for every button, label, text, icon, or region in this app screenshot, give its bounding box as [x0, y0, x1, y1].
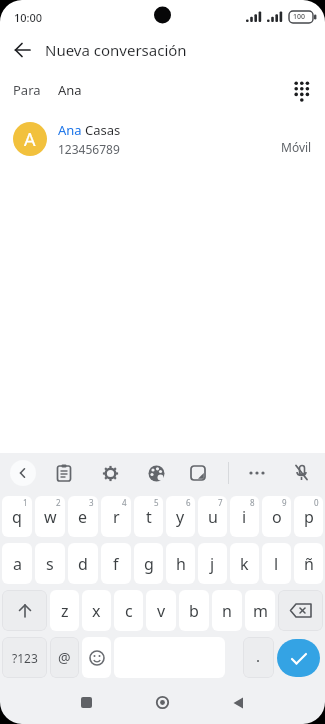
button[interactable]: c	[114, 590, 143, 631]
staticText: v	[157, 600, 166, 622]
button[interactable]: t	[134, 496, 163, 537]
staticText: k	[240, 553, 249, 575]
button[interactable]	[15, 42, 31, 58]
staticText: b	[189, 600, 199, 622]
button[interactable]: u	[198, 496, 227, 537]
button[interactable]: b	[179, 590, 209, 631]
staticText: 9	[282, 497, 287, 508]
button[interactable]	[82, 637, 111, 678]
staticText: t	[146, 506, 152, 528]
button[interactable]	[56, 464, 72, 482]
staticText: i	[242, 506, 247, 528]
staticText: m	[253, 600, 268, 622]
button[interactable]: v	[146, 590, 176, 631]
staticText: 1	[23, 497, 28, 508]
staticText: Nueva conversación	[45, 40, 187, 60]
button[interactable]	[248, 465, 266, 481]
button[interactable]: ?123	[2, 637, 47, 678]
staticText: A	[24, 127, 36, 152]
button[interactable]	[278, 590, 323, 631]
button[interactable]: x	[82, 590, 111, 631]
button[interactable]: z	[50, 590, 79, 631]
button[interactable]: f	[101, 543, 131, 584]
button[interactable]: Para	[0, 68, 325, 112]
staticText: 4	[122, 497, 127, 508]
staticText: y	[176, 506, 185, 528]
staticText: x	[92, 600, 101, 622]
staticText: c	[125, 600, 133, 622]
staticText: u	[208, 506, 218, 528]
staticText: 0	[314, 497, 319, 508]
staticText: f	[113, 553, 119, 575]
staticText: 123456789	[58, 141, 120, 157]
staticText: 6	[186, 497, 191, 508]
staticText: j	[210, 553, 215, 575]
button[interactable]	[293, 464, 311, 482]
staticText: 5	[154, 497, 159, 508]
button[interactable]	[10, 460, 36, 486]
button[interactable]: e	[68, 496, 98, 537]
button[interactable]	[190, 465, 206, 481]
staticText: p	[304, 506, 314, 528]
staticText: Ana	[58, 81, 82, 99]
staticText: g	[144, 553, 154, 575]
staticText: q	[12, 506, 22, 528]
staticText: 8	[250, 497, 255, 508]
staticText: d	[78, 553, 88, 575]
staticText: w	[44, 506, 57, 528]
button[interactable]: ñ	[294, 543, 323, 584]
staticText: 10:00	[14, 10, 43, 25]
button[interactable]: m	[245, 590, 275, 631]
button[interactable]: w	[35, 496, 65, 537]
staticText: Para	[13, 81, 41, 99]
button[interactable]: y	[166, 496, 195, 537]
staticText: z	[61, 600, 69, 622]
button[interactable]: p	[294, 496, 323, 537]
button[interactable]: .	[243, 637, 274, 678]
staticText: a	[13, 553, 22, 575]
button[interactable]: q	[2, 496, 32, 537]
button[interactable]: j	[198, 543, 227, 584]
button[interactable]	[233, 697, 244, 709]
staticText: .	[256, 646, 261, 666]
button[interactable]: n	[212, 590, 242, 631]
button[interactable]	[2, 590, 47, 631]
button[interactable]: i	[230, 496, 259, 537]
button[interactable]: r	[101, 496, 131, 537]
staticText: ñ	[304, 553, 314, 575]
staticText: o	[272, 506, 282, 528]
button[interactable]: d	[68, 543, 98, 584]
staticText: Ana Casas	[58, 121, 121, 139]
button[interactable]	[277, 639, 320, 677]
staticText: n	[222, 600, 232, 622]
staticText: e	[78, 506, 88, 528]
button[interactable]	[294, 81, 310, 100]
button[interactable]	[81, 697, 92, 708]
button[interactable]: k	[230, 543, 259, 584]
button[interactable]: l	[262, 543, 291, 584]
staticText: s	[46, 553, 54, 575]
staticText: ?123	[12, 650, 38, 666]
button[interactable]: h	[166, 543, 195, 584]
button[interactable]: s	[35, 543, 65, 584]
button[interactable]: g	[134, 543, 163, 584]
button[interactable]: A	[0, 112, 325, 166]
button[interactable]	[148, 465, 165, 482]
staticText: @	[58, 648, 71, 667]
button[interactable]: o	[262, 496, 291, 537]
button[interactable]: a	[2, 543, 32, 584]
staticText: 2	[56, 497, 61, 508]
staticText: h	[176, 553, 186, 575]
staticText: 7	[218, 497, 223, 508]
staticText: 3	[89, 497, 94, 508]
button[interactable]	[156, 696, 169, 709]
button[interactable]	[102, 465, 119, 482]
staticText: Móvil	[281, 139, 312, 155]
button[interactable]: @	[50, 637, 79, 678]
staticText: 100	[293, 12, 306, 22]
staticText: l	[274, 553, 279, 575]
staticText: r	[113, 506, 120, 528]
